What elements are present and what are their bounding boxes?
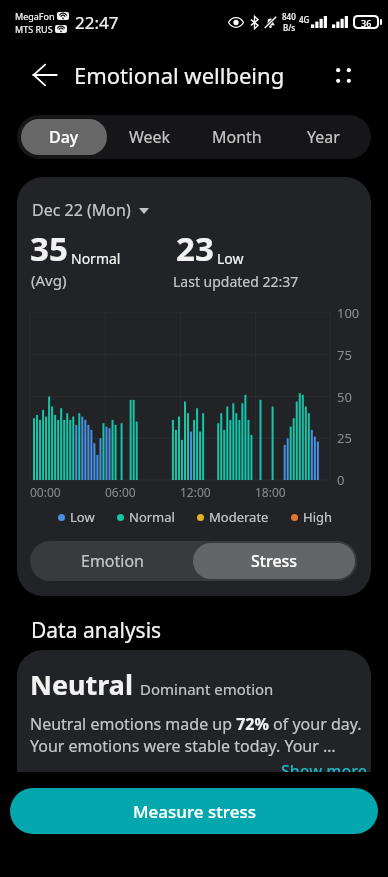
staticText: 23 [176,226,214,271]
staticText: 840 [282,11,296,22]
button[interactable]: Back [25,55,65,95]
staticText: High [303,508,333,526]
button[interactable]: Measure stress [10,788,378,834]
staticText: 22:47 [75,11,119,34]
staticText: 00:00 [30,484,61,500]
staticText: Last updated 22:37 [173,272,299,291]
button[interactable]: Neutral [17,650,371,772]
staticText: Low [70,508,95,526]
staticText: 06:00 [105,484,136,500]
staticText: Moderate [209,508,269,526]
button[interactable]: Week [107,119,193,155]
staticText: Emotional wellbeing [74,60,285,90]
staticText: Show more [281,760,367,772]
staticText: 35 [30,226,68,271]
staticText: Dec 22 (Mon) [32,199,131,221]
staticText: 75 [337,346,352,364]
staticText: MTS RUS [15,23,53,35]
staticText: 36 [361,17,372,27]
button[interactable]: Dec 22 (Mon) [32,199,149,221]
staticText: Dominant emotion [140,679,274,699]
staticText: 18:00 [255,484,286,500]
staticText: Stress [251,550,298,572]
staticText: Normal [71,249,121,268]
staticText: 4G [299,14,310,25]
staticText: Measure stress [133,800,256,823]
staticText: Normal [129,508,175,526]
staticText: Day [49,126,79,148]
staticText: Month [212,126,262,148]
staticText: 12:00 [180,484,211,500]
staticText: (Avg) [31,270,67,290]
staticText: Year [307,126,340,148]
staticText: Neutral [30,666,134,703]
button[interactable]: Emotion [32,543,193,579]
button[interactable]: More options [323,55,363,95]
staticText: 100 [337,304,360,322]
staticText: MegaFon [15,10,55,22]
button[interactable]: Year [280,119,367,155]
button[interactable]: Month [193,119,280,155]
staticText: Neutral emotions made up 72% of your day… [30,713,371,757]
button[interactable]: Stress [193,543,355,579]
staticText: B/s [283,22,296,33]
staticText: 0 [337,471,345,489]
staticText: Low [217,249,244,268]
button[interactable]: Day [21,119,107,155]
staticText: 50 [337,388,352,406]
staticText: Data analysis [31,616,162,645]
staticText: Emotion [81,550,145,572]
staticText: Week [129,126,171,148]
staticText: 25 [337,429,352,447]
